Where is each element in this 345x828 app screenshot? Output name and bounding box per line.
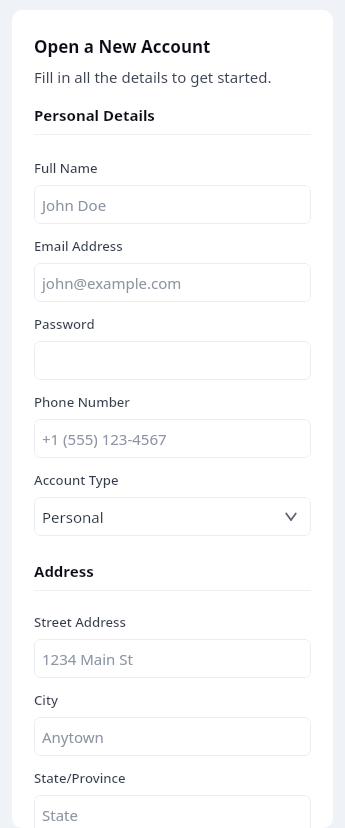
staticText: +1 (555) 123-4567 — [42, 429, 167, 449]
staticText: Password — [34, 315, 95, 333]
staticText: State — [42, 805, 78, 825]
staticText: John Doe — [42, 195, 107, 215]
staticText: john@example.com — [42, 273, 182, 293]
staticText: Fill in all the details to get started. — [34, 67, 272, 87]
staticText: Email Address — [34, 237, 123, 255]
other: Open Account Type menu — [285, 510, 297, 523]
button[interactable]: Street Address — [34, 639, 311, 678]
staticText: Personal Details — [34, 105, 155, 125]
staticText: Full Name — [34, 159, 98, 177]
button[interactable]: Email Address — [34, 263, 311, 302]
button[interactable]: Password — [34, 341, 311, 380]
button[interactable]: Full Name — [34, 185, 311, 224]
button[interactable]: City — [34, 717, 311, 756]
staticText: Address — [34, 561, 94, 581]
staticText: 1234 Main St — [42, 649, 133, 669]
button[interactable]: Account Type — [34, 497, 311, 536]
staticText: Account Type — [34, 471, 119, 489]
staticText: State/Province — [34, 769, 126, 787]
staticText: Open a New Account — [34, 35, 211, 58]
button[interactable]: Phone Number — [34, 419, 311, 458]
staticText: Street Address — [34, 613, 126, 631]
staticText: Personal — [42, 507, 104, 527]
staticText: City — [34, 691, 58, 709]
staticText: Phone Number — [34, 393, 130, 411]
staticText: Anytown — [42, 727, 104, 747]
button[interactable]: State/Province — [34, 795, 311, 828]
